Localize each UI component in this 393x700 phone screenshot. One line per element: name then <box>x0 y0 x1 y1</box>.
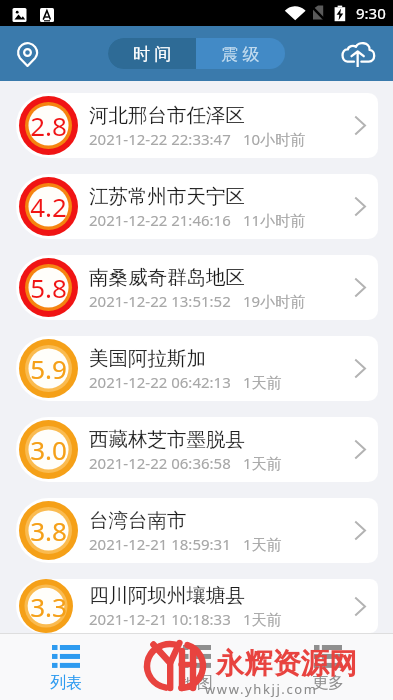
button[interactable]: 地图 <box>131 634 262 700</box>
button[interactable]: 5.8 <box>16 255 378 320</box>
staticText: 11小时前 <box>243 210 306 230</box>
button[interactable]: 4.2 <box>16 174 378 239</box>
staticText: 江苏常州市天宁区 <box>89 184 245 209</box>
staticText: 2021-12-22 13:51:52 <box>89 291 231 311</box>
staticText: 西藏林芝市墨脱县 <box>89 427 245 452</box>
staticText: 2021-12-22 06:42:13 <box>89 372 231 392</box>
button[interactable]: 5.9 <box>16 336 378 401</box>
button[interactable]: 3.0 <box>16 417 378 482</box>
staticText: 2021-12-21 18:59:31 <box>89 534 231 554</box>
staticText: 1天前 <box>243 372 282 392</box>
staticText: 1天前 <box>243 609 282 629</box>
staticText: 9:30 <box>356 3 386 23</box>
staticText: 5.9 <box>30 351 67 386</box>
staticText: 10小时前 <box>243 129 306 149</box>
staticText: 3.0 <box>30 432 67 467</box>
staticText: 19小时前 <box>243 291 306 311</box>
staticText: 河北邢台市任泽区 <box>89 103 245 128</box>
staticText: 时 间 <box>133 42 172 65</box>
staticText: 2021-12-22 22:33:47 <box>89 129 231 149</box>
staticText: 2.8 <box>30 108 67 143</box>
staticText: 美国阿拉斯加 <box>89 346 206 371</box>
staticText: 2021-12-22 06:36:58 <box>89 453 231 473</box>
button[interactable]: 3.8 <box>16 498 378 563</box>
staticText: 4.2 <box>30 189 67 224</box>
staticText: 1天前 <box>243 534 282 554</box>
staticText: 2021-12-21 10:18:33 <box>89 609 231 629</box>
button[interactable]: 时 间 <box>108 38 196 69</box>
staticText: 地图 <box>181 673 213 693</box>
staticText: 南桑威奇群岛地区 <box>89 265 245 290</box>
staticText: 永辉资源网 <box>216 646 357 682</box>
button[interactable]: 更多 <box>262 634 393 700</box>
button[interactable]: 3.3 <box>16 579 378 633</box>
staticText: 台湾台南市 <box>89 508 187 533</box>
staticText: 2021-12-22 21:46:16 <box>89 210 231 230</box>
button[interactable]: Location <box>9 36 45 72</box>
button[interactable]: 2.8 <box>16 93 378 158</box>
staticText: 震 级 <box>221 42 260 65</box>
button[interactable]: 列表 <box>0 634 131 700</box>
staticText: www.yhkjj.com <box>205 680 318 698</box>
staticText: 3.3 <box>30 589 67 624</box>
staticText: 5.8 <box>30 270 67 305</box>
staticText: 列表 <box>50 673 82 693</box>
staticText: 四川阿坝州壤塘县 <box>89 583 245 608</box>
staticText: 1天前 <box>243 453 282 473</box>
button[interactable]: 震 级 <box>196 38 285 69</box>
button[interactable]: Upload <box>339 35 377 73</box>
staticText: 3.8 <box>30 513 67 548</box>
staticText: 更多 <box>312 673 344 693</box>
